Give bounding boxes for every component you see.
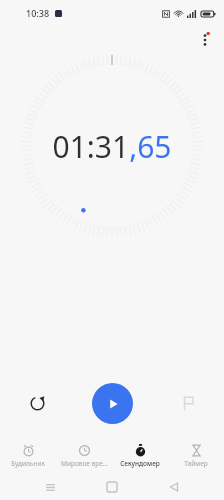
staticText: 10:38 xyxy=(26,7,50,19)
button[interactable]: Recents xyxy=(19,474,81,500)
staticText: Будильник xyxy=(11,459,45,468)
button[interactable]: Lap xyxy=(170,385,206,421)
button[interactable]: Мировое вре… xyxy=(56,438,112,474)
staticText: Мировое вре… xyxy=(61,459,108,468)
button[interactable]: More options xyxy=(192,27,218,53)
button[interactable]: Start xyxy=(92,383,133,424)
staticText: Секундомер xyxy=(120,459,160,468)
button[interactable]: Home xyxy=(81,474,143,500)
button[interactable]: Будильник xyxy=(0,438,56,474)
button[interactable]: Reset xyxy=(19,385,55,421)
staticText: Таймер xyxy=(184,459,208,468)
button[interactable]: Back xyxy=(143,474,205,500)
button[interactable]: Секундомер xyxy=(112,438,168,474)
staticText: 01:31,65 xyxy=(52,126,172,167)
button[interactable]: Таймер xyxy=(168,438,224,474)
